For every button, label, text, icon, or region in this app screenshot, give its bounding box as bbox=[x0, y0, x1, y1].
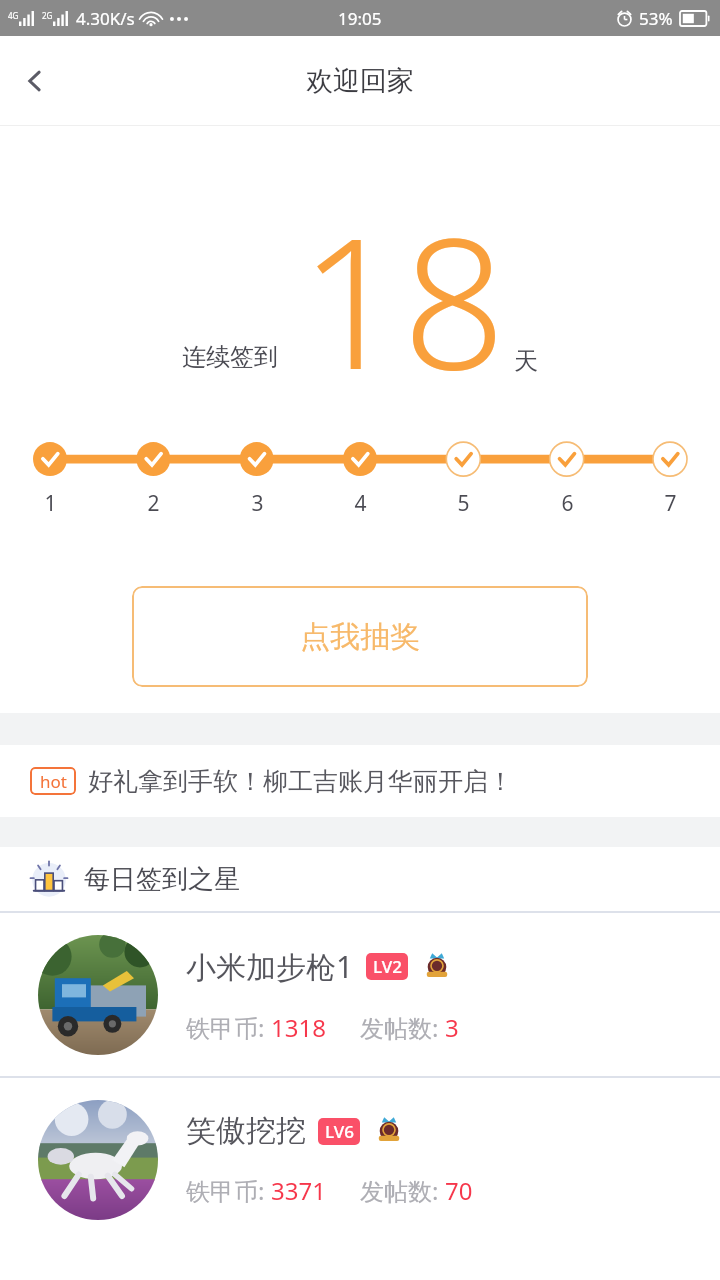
button[interactable]: 点我抽奖 bbox=[132, 586, 588, 687]
staticText: LV2 bbox=[373, 955, 402, 978]
staticText: 18 bbox=[300, 177, 506, 422]
staticText: 连续签到 bbox=[182, 342, 278, 372]
staticText: 3 bbox=[445, 1011, 459, 1044]
staticText: hot bbox=[40, 770, 67, 793]
staticText: 1 bbox=[44, 489, 57, 518]
staticText: 发帖数: bbox=[360, 1011, 445, 1044]
staticText: 小米加步枪1 bbox=[186, 946, 354, 987]
staticText: 每日签到之星 bbox=[84, 863, 240, 896]
staticText: 3 bbox=[251, 489, 264, 518]
staticText: 5 bbox=[457, 489, 470, 518]
staticText: 好礼拿到手软！柳工吉账月华丽开启！ bbox=[88, 766, 513, 797]
staticText: 7 bbox=[664, 489, 677, 518]
staticText: 70 bbox=[445, 1174, 473, 1207]
staticText: 4G bbox=[8, 10, 19, 21]
staticText: 天 bbox=[514, 346, 538, 376]
button[interactable]: 小米加步枪1 bbox=[0, 913, 720, 1076]
staticText: 1318 bbox=[271, 1011, 326, 1044]
staticText: 6 bbox=[561, 489, 574, 518]
button[interactable]: Back bbox=[0, 46, 70, 116]
staticText: 53% bbox=[639, 7, 673, 30]
staticText: 欢迎回家 bbox=[306, 64, 414, 98]
button[interactable]: 笑傲挖挖 bbox=[0, 1078, 720, 1241]
staticText: 笑傲挖挖 bbox=[186, 1112, 306, 1150]
staticText: LV6 bbox=[325, 1120, 354, 1143]
staticText: 19:05 bbox=[338, 7, 382, 30]
staticText: 3371 bbox=[271, 1174, 326, 1207]
staticText: 发帖数: bbox=[360, 1174, 445, 1207]
staticText: 点我抽奖 bbox=[300, 618, 420, 656]
staticText: 4 bbox=[354, 489, 367, 518]
staticText: 铁甲币: bbox=[186, 1174, 271, 1207]
staticText: 2G bbox=[42, 10, 53, 21]
staticText: 铁甲币: bbox=[186, 1011, 271, 1044]
staticText: 4.30K/s bbox=[76, 7, 135, 30]
button[interactable]: hot bbox=[0, 745, 720, 817]
staticText: 2 bbox=[147, 489, 160, 518]
